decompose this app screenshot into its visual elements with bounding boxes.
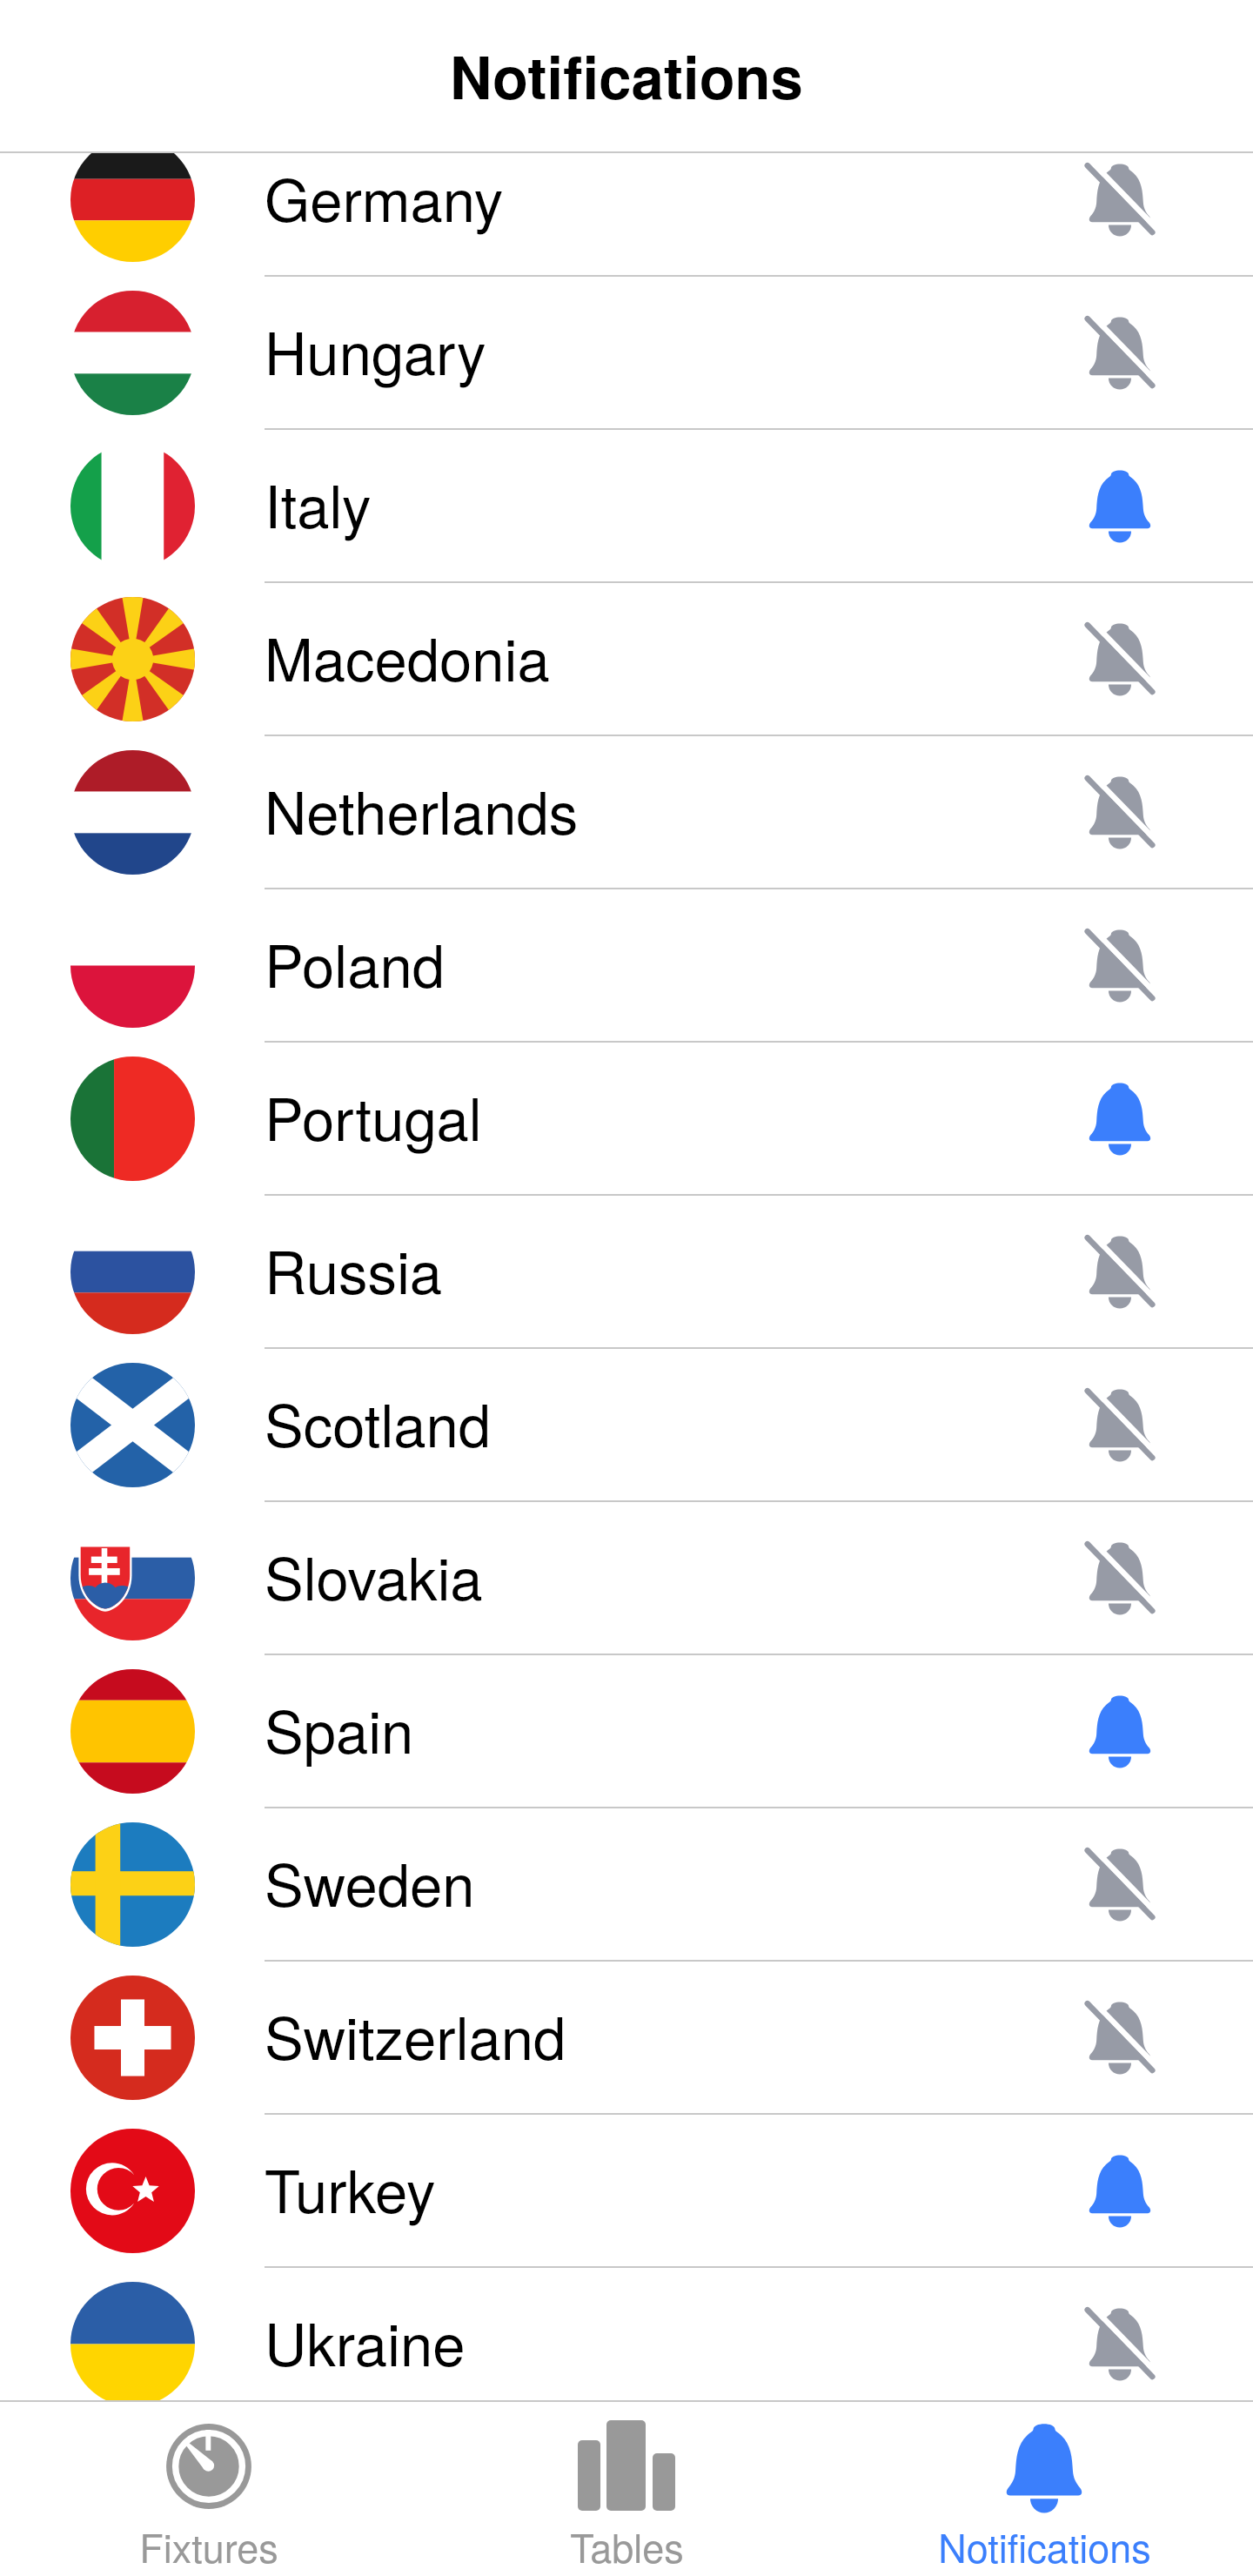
staticText: Poland: [265, 921, 445, 1004]
button[interactable]: Netherlands: [0, 736, 1253, 889]
button[interactable]: Switzerland: [0, 1962, 1253, 2115]
button[interactable]: Spain: [0, 1655, 1253, 1808]
button[interactable]: Turkey: [0, 2115, 1253, 2268]
staticText: Russia: [265, 1227, 443, 1311]
staticText: Ukraine: [265, 2299, 466, 2383]
staticText: Scotland: [265, 1380, 492, 1464]
staticText: Fixtures: [139, 2518, 278, 2573]
button[interactable]: Ukraine: [0, 2268, 1253, 2400]
staticText: Switzerland: [265, 1993, 566, 2076]
staticText: Spain: [265, 1687, 414, 1770]
staticText: Sweden: [265, 1840, 475, 1923]
staticText: Netherlands: [265, 768, 579, 851]
staticText: Macedonia: [265, 614, 550, 698]
staticText: Hungary: [265, 308, 486, 392]
button[interactable]: Macedonia: [0, 583, 1253, 736]
staticText: Germany: [265, 155, 504, 238]
button[interactable]: Portugal: [0, 1043, 1253, 1196]
button[interactable]: Tables: [418, 2400, 835, 2576]
staticText: Tables: [570, 2518, 684, 2573]
staticText: Turkey: [265, 2146, 436, 2230]
button[interactable]: Notifications: [835, 2400, 1253, 2576]
staticText: Portugal: [265, 1074, 482, 1157]
button[interactable]: Fixtures: [0, 2400, 418, 2576]
button[interactable]: Hungary: [0, 277, 1253, 430]
staticText: Slovakia: [265, 1533, 483, 1617]
button[interactable]: Sweden: [0, 1808, 1253, 1962]
button[interactable]: Poland: [0, 889, 1253, 1043]
button[interactable]: Scotland: [0, 1349, 1253, 1502]
staticText: Notifications: [450, 34, 803, 117]
button[interactable]: Slovakia: [0, 1502, 1253, 1655]
button[interactable]: Italy: [0, 430, 1253, 583]
staticText: Italy: [265, 461, 372, 545]
staticText: Notifications: [938, 2518, 1151, 2573]
button[interactable]: Russia: [0, 1196, 1253, 1349]
button[interactable]: Germany: [0, 153, 1253, 277]
